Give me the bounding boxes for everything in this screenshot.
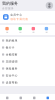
staticText: 信用 <box>32 31 34 33</box>
staticText: 更多 <box>45 31 47 33</box>
button[interactable]: 收款 <box>14 27 27 33</box>
staticText: 我的服务 <box>2 1 18 6</box>
button[interactable]: 银行卡 <box>0 44 55 51</box>
staticText: 花呗借呗 <box>6 60 18 63</box>
button[interactable]: 理财 <box>14 97 27 100</box>
button[interactable]: 保险服务 <box>0 65 55 72</box>
button[interactable]: 消息 <box>27 97 41 100</box>
staticText: 领取专属优惠 <box>10 17 28 21</box>
staticText: 保险服务 <box>6 67 18 70</box>
button[interactable]: 花呗借呗 <box>0 58 55 65</box>
button[interactable]: 信用 <box>27 27 40 33</box>
button[interactable]: 设置帮助 <box>0 79 55 86</box>
staticText: 全部服务 <box>2 7 14 10</box>
staticText: 余额理财 <box>6 53 18 56</box>
button[interactable]: 安全中心 <box>0 72 55 79</box>
button[interactable]: 更多 <box>40 27 53 33</box>
button[interactable]: 我的账单 <box>0 37 55 44</box>
button[interactable]: 余额理财 <box>0 51 55 58</box>
staticText: 银行卡 <box>6 46 15 49</box>
button[interactable]: 我的 <box>41 97 54 100</box>
staticText: 设置帮助 <box>6 81 18 84</box>
button[interactable]: 首页 <box>0 97 14 100</box>
staticText: 安全中心 <box>6 74 18 77</box>
button[interactable]: 转账 <box>0 27 14 33</box>
button[interactable]: Profile <box>45 1 53 9</box>
staticText: 我的账单 <box>6 39 18 42</box>
staticText: 转账 <box>6 31 8 33</box>
staticText: 会员中心 <box>10 13 22 17</box>
button[interactable]: 会员中心 <box>0 11 55 23</box>
staticText: 收款 <box>19 31 21 33</box>
